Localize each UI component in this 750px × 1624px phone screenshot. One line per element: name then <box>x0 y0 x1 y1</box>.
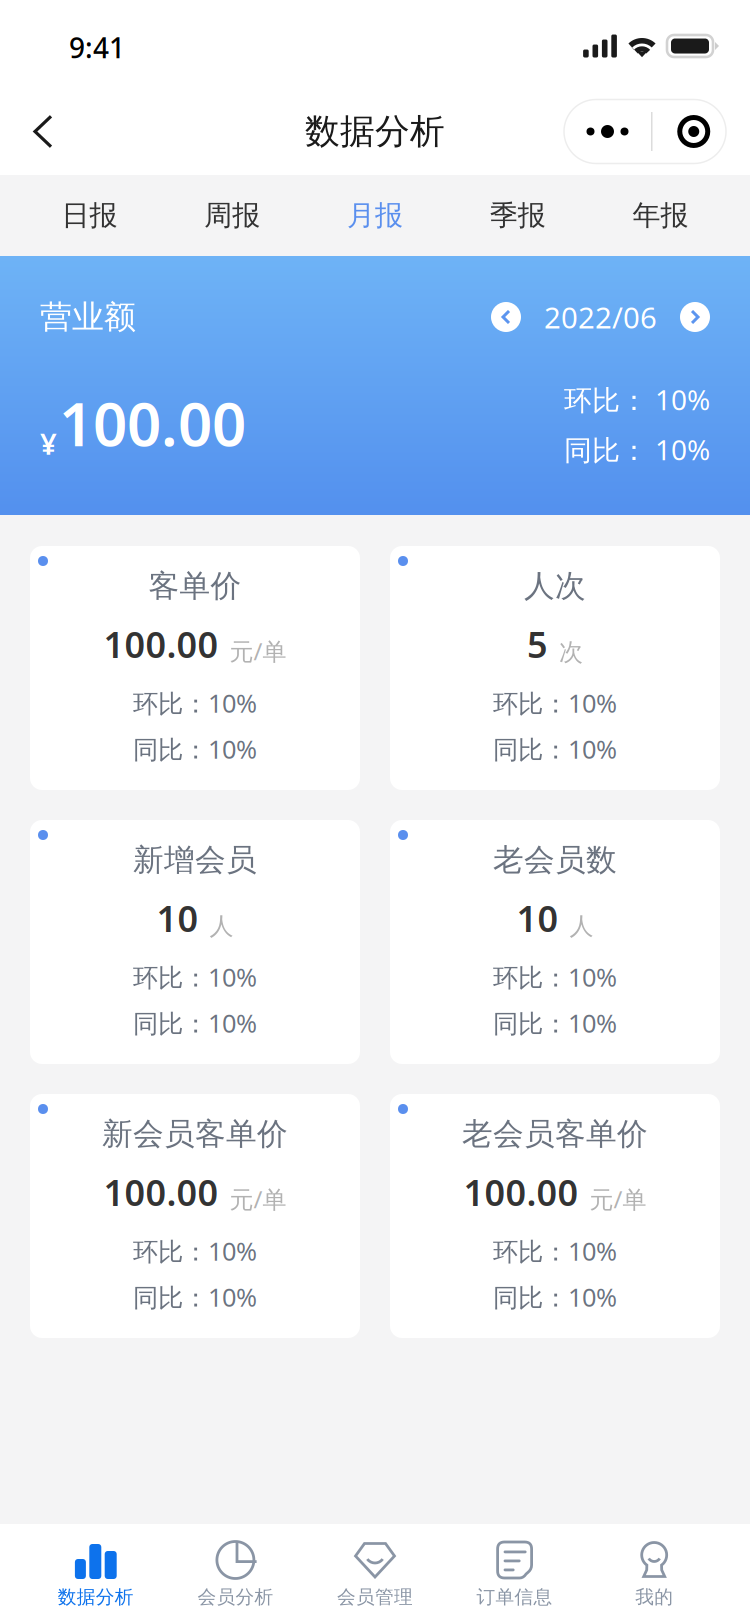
staticText: 环比：10% <box>493 686 617 720</box>
staticText: 同比：10% <box>133 1006 257 1040</box>
staticText: 9:41 <box>69 29 125 66</box>
staticText: 周报 <box>204 198 260 233</box>
staticText: 元/单 <box>589 1183 646 1215</box>
button[interactable]: 数据分析 <box>26 1524 166 1624</box>
staticText: 年报 <box>633 198 689 233</box>
staticText: 同比：10% <box>133 732 257 766</box>
staticText: ¥ <box>40 424 57 463</box>
staticText: 100.00 <box>463 1168 578 1216</box>
staticText: 环比：10% <box>133 686 257 720</box>
button[interactable]: 周报 <box>161 175 304 256</box>
staticText: 次 <box>559 637 583 667</box>
staticText: 同比：10% <box>493 732 617 766</box>
staticText: 同比：10% <box>493 1280 617 1314</box>
staticText: 环比：10% <box>493 1234 617 1268</box>
button[interactable]: 季报 <box>446 175 589 256</box>
staticText: 人 <box>569 911 593 941</box>
staticText: 日报 <box>61 198 117 233</box>
button[interactable]: 更多功能 <box>564 99 726 163</box>
staticText: 5 <box>527 620 548 668</box>
staticText: 会员分析 <box>197 1585 273 1608</box>
staticText: 同比： 10% <box>564 431 710 468</box>
staticText: 10 <box>156 894 198 942</box>
staticText: 新会员客单价 <box>102 1115 288 1153</box>
staticText: 数据分析 <box>58 1585 134 1608</box>
staticText: 100.00 <box>103 620 218 668</box>
staticText: 2022/06 <box>544 297 657 336</box>
staticText: 环比：10% <box>133 1234 257 1268</box>
staticText: 新增会员 <box>133 841 257 879</box>
staticText: 订单信息 <box>477 1585 553 1608</box>
staticText: 元/单 <box>229 1183 286 1215</box>
staticText: 环比： 10% <box>564 381 710 418</box>
staticText: 元/单 <box>229 635 286 667</box>
button[interactable]: 月报 <box>304 175 446 256</box>
staticText: 月报 <box>347 198 403 233</box>
button[interactable]: 会员管理 <box>305 1524 445 1624</box>
staticText: 会员管理 <box>337 1585 413 1608</box>
staticText: 环比：10% <box>133 960 257 994</box>
staticText: 数据分析 <box>305 110 445 153</box>
button[interactable]: 年报 <box>589 175 732 256</box>
button[interactable]: 日报 <box>18 175 161 256</box>
staticText: 营业额 <box>40 297 136 337</box>
staticText: 老会员数 <box>493 841 617 879</box>
button[interactable]: 下一月 <box>680 302 710 332</box>
staticText: 客单价 <box>148 567 241 605</box>
button[interactable]: 上一月 <box>491 302 521 332</box>
button[interactable]: 返回 <box>10 88 76 175</box>
staticText: 季报 <box>490 198 546 233</box>
staticText: 环比：10% <box>493 960 617 994</box>
button[interactable]: 会员分析 <box>166 1524 305 1624</box>
staticText: 10 <box>516 894 558 942</box>
staticText: 同比：10% <box>133 1280 257 1314</box>
button[interactable]: 订单信息 <box>445 1524 584 1624</box>
staticText: 人 <box>209 911 233 941</box>
staticText: 同比：10% <box>493 1006 617 1040</box>
button[interactable]: 我的 <box>584 1524 724 1624</box>
staticText: 我的 <box>635 1585 673 1608</box>
staticText: 老会员客单价 <box>462 1115 648 1153</box>
staticText: 100.00 <box>103 1168 218 1216</box>
staticText: 人次 <box>524 567 586 605</box>
staticText: 100.00 <box>59 383 246 463</box>
